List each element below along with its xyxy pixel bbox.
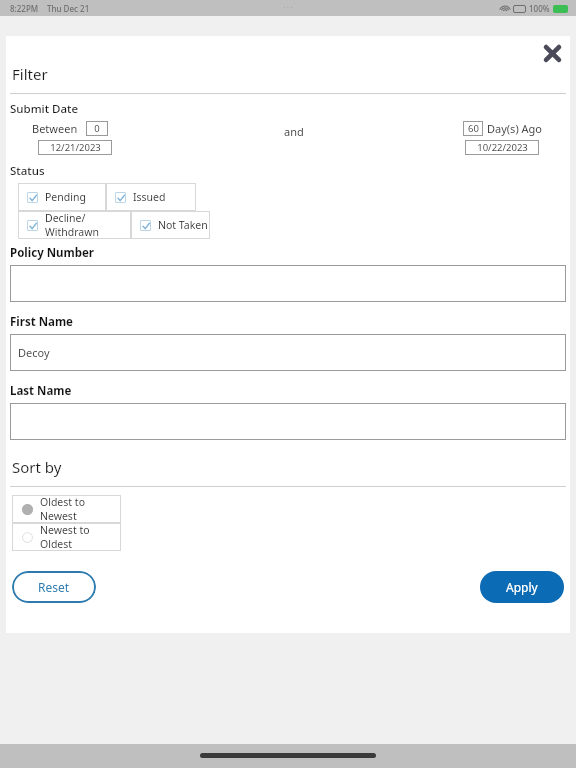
button[interactable] xyxy=(10,265,566,302)
button[interactable]: Close xyxy=(535,36,569,70)
staticText: Issued xyxy=(133,190,166,204)
staticText: 60 xyxy=(468,122,479,135)
staticText: 8:22PM xyxy=(10,3,39,14)
staticText: • • • xyxy=(283,4,293,12)
staticText: Thu Dec 21 xyxy=(47,3,90,14)
staticText: Oldest to Newest xyxy=(40,495,121,523)
staticText: Decline/Withdrawn xyxy=(45,211,131,239)
button[interactable]: Pending xyxy=(18,183,106,211)
staticText: 12/21/2023 xyxy=(50,141,101,154)
staticText: 10/22/2023 xyxy=(477,141,528,154)
staticText: Sort by xyxy=(12,457,62,477)
staticText: Status xyxy=(10,163,45,179)
staticText: Last Name xyxy=(10,383,72,399)
staticText: Decoy xyxy=(18,345,50,360)
staticText: Between xyxy=(32,121,78,136)
staticText: Reset xyxy=(38,579,70,595)
staticText: and xyxy=(284,124,304,139)
button[interactable] xyxy=(10,403,566,440)
staticText: 100% xyxy=(529,3,550,14)
staticText: Pending xyxy=(45,190,86,204)
button[interactable]: Issued xyxy=(106,183,196,211)
staticText: Filter xyxy=(12,64,48,84)
button[interactable]: 12/21/2023 xyxy=(38,140,112,155)
button[interactable]: 10/22/2023 xyxy=(465,140,539,155)
button[interactable]: Reset xyxy=(12,571,96,603)
staticText: Newest to Oldest xyxy=(40,523,121,551)
button[interactable]: Not Taken xyxy=(131,211,210,239)
staticText: Not Taken xyxy=(158,218,208,232)
staticText: Apply xyxy=(506,579,538,595)
button[interactable]: Decline/Withdrawn xyxy=(18,211,131,239)
button[interactable]: Oldest to Newest xyxy=(12,495,121,523)
staticText: Submit Date xyxy=(10,101,79,117)
staticText: Policy Number xyxy=(10,245,94,261)
button[interactable]: Apply xyxy=(480,571,564,603)
staticText: 0 xyxy=(94,122,100,135)
button[interactable]: Newest to Oldest xyxy=(12,523,121,551)
staticText: First Name xyxy=(10,314,73,330)
button[interactable]: Decoy xyxy=(10,334,566,371)
staticText: Day(s) Ago xyxy=(487,121,542,136)
